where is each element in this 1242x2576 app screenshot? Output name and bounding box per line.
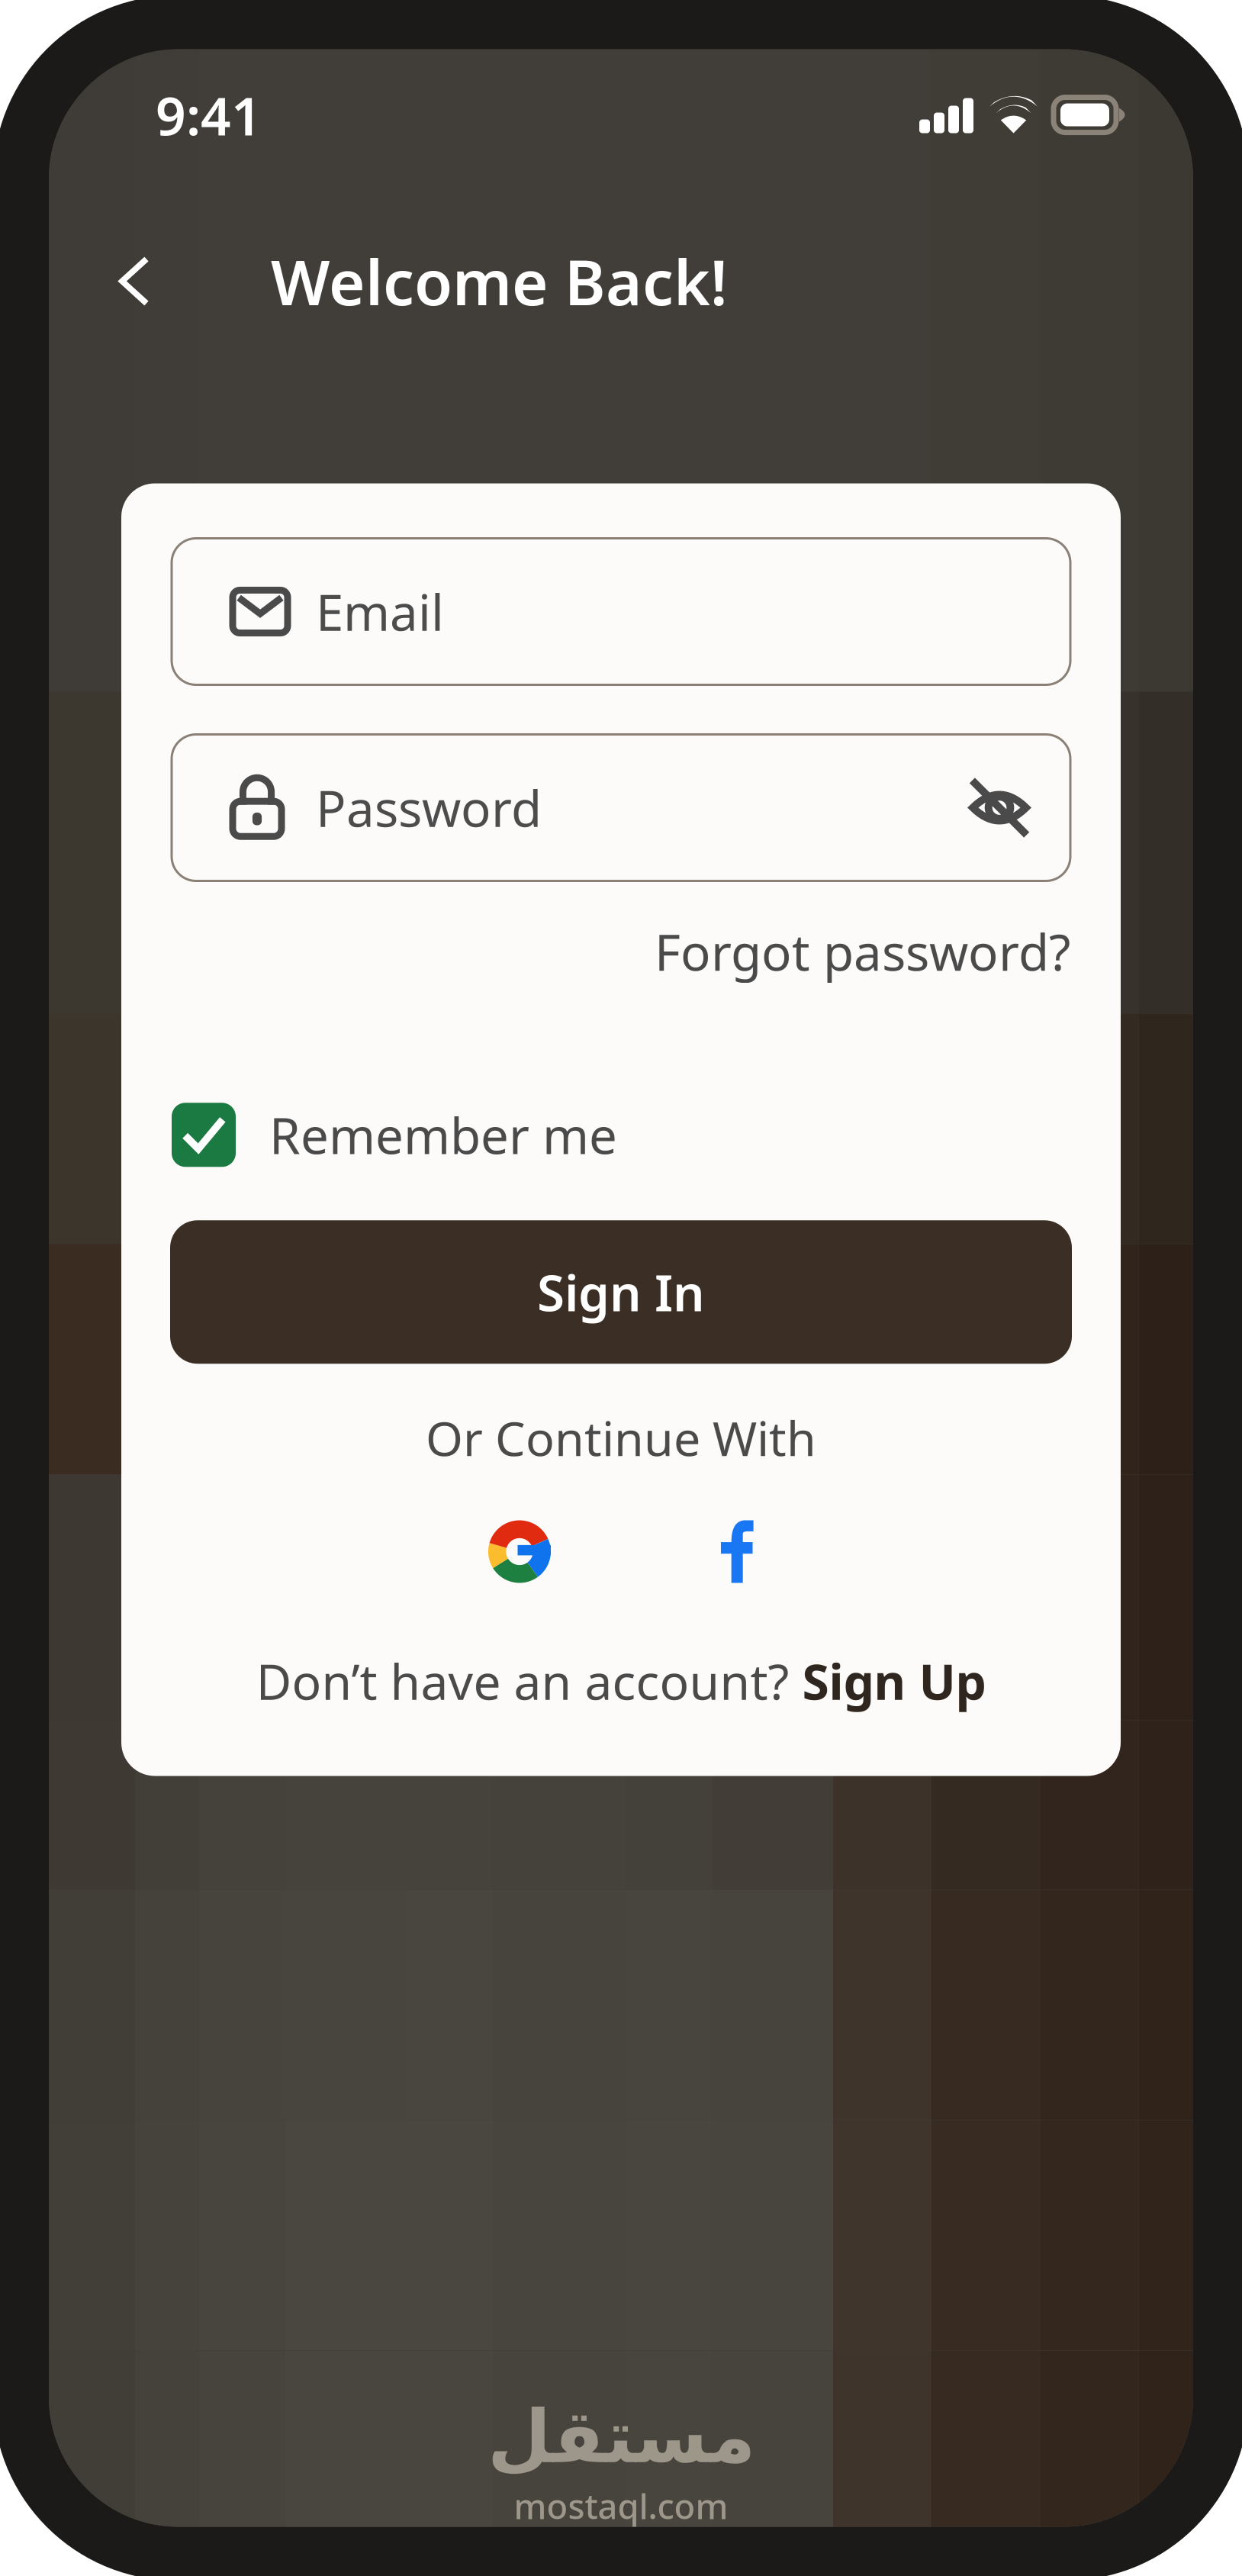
button[interactable]: Forgot password? — [655, 918, 1070, 985]
staticText: Remember me — [269, 1102, 617, 1168]
staticText: Password — [316, 775, 542, 841]
staticText: 9:41 — [156, 80, 262, 150]
button[interactable]: Don’t have an account? — [256, 1649, 986, 1713]
button[interactable]: Remember me — [172, 1103, 236, 1167]
staticText: Sign Up — [802, 1649, 986, 1713]
staticText: Or Continue With — [426, 1406, 816, 1469]
button[interactable]: Continue with Google — [488, 1520, 551, 1583]
staticText: Email — [316, 578, 444, 645]
button[interactable]: Back — [99, 240, 169, 322]
button[interactable]: Continue with Facebook — [721, 1520, 754, 1583]
staticText: mostaql.com — [514, 2483, 728, 2529]
staticText: Don’t have an account? — [256, 1649, 802, 1713]
staticText: Welcome Back! — [271, 240, 728, 322]
button[interactable]: Sign In — [170, 1220, 1072, 1364]
staticText: مستقل — [487, 2395, 755, 2478]
staticText: Sign In — [537, 1259, 705, 1325]
button[interactable]: Show password — [968, 776, 1031, 839]
staticText: Forgot password? — [655, 918, 1070, 985]
